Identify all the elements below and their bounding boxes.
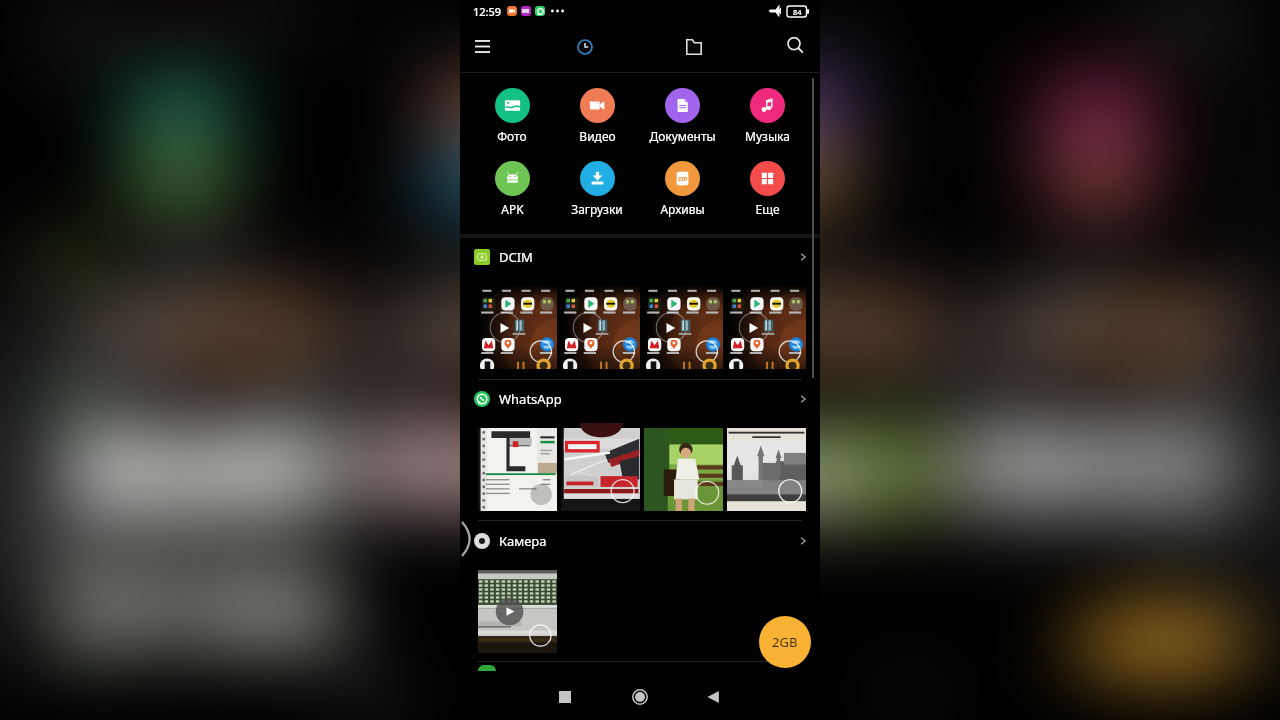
staticText: Архивы xyxy=(712,201,874,217)
staticText: Еще xyxy=(1054,201,1144,217)
button[interactable]: Recents xyxy=(545,677,585,717)
button[interactable] xyxy=(654,428,939,511)
button[interactable] xyxy=(57,428,341,511)
button[interactable]: APK xyxy=(467,161,557,217)
button[interactable]: Камера xyxy=(0,525,1280,557)
staticText: DCIM xyxy=(499,248,533,266)
staticText: WhatsApp xyxy=(499,390,562,408)
staticText: Музыка xyxy=(1018,128,1180,144)
staticText: Видео xyxy=(420,128,554,144)
staticText: Документы xyxy=(672,128,914,144)
staticText: 2GB xyxy=(1115,633,1209,651)
staticText: DCIM xyxy=(132,248,255,266)
staticText: ZIP xyxy=(678,175,688,183)
button[interactable]: DCIM xyxy=(0,241,1280,273)
staticText: Документы xyxy=(649,128,716,144)
button[interactable]: Еще xyxy=(722,161,812,217)
staticText: APK xyxy=(501,201,524,217)
button[interactable]: Folders xyxy=(676,29,712,65)
button[interactable]: Menu xyxy=(6,28,136,64)
staticText: ZIP xyxy=(777,175,813,183)
button[interactable] xyxy=(727,286,806,369)
button[interactable]: Search xyxy=(1133,27,1263,63)
button[interactable]: Home xyxy=(620,677,660,717)
staticText: Камера xyxy=(132,532,305,550)
button[interactable] xyxy=(356,286,640,369)
button[interactable] xyxy=(727,428,806,511)
button[interactable] xyxy=(478,286,557,369)
button[interactable]: APK xyxy=(17,161,341,217)
staticText: 84 xyxy=(793,7,802,17)
button[interactable]: WhatsApp xyxy=(0,383,1280,415)
button[interactable] xyxy=(57,286,341,369)
button[interactable]: Документы xyxy=(637,88,727,144)
button[interactable]: WhatsApp xyxy=(460,383,820,415)
button[interactable] xyxy=(561,428,640,511)
button[interactable]: Камера xyxy=(460,525,820,557)
button[interactable]: Фото xyxy=(467,88,557,144)
staticText: Камера xyxy=(499,532,547,550)
button[interactable]: 2GB xyxy=(759,616,811,668)
staticText: WB xyxy=(522,8,530,14)
button[interactable] xyxy=(644,428,723,511)
staticText: 2GB xyxy=(772,633,798,651)
button[interactable] xyxy=(953,428,1238,511)
button[interactable]: Recents xyxy=(298,677,442,717)
button[interactable]: Загрузки xyxy=(552,161,642,217)
button[interactable] xyxy=(478,428,557,511)
button[interactable] xyxy=(654,286,939,369)
button[interactable]: Еще xyxy=(935,161,1259,217)
staticText: Фото xyxy=(125,128,233,144)
staticText: 12:59 xyxy=(473,4,502,19)
button[interactable]: Документы xyxy=(629,88,953,144)
staticText: Загрузки xyxy=(392,201,579,217)
button[interactable]: Загрузки xyxy=(323,161,647,217)
staticText: Видео xyxy=(579,128,616,144)
button[interactable]: Фото xyxy=(17,88,341,144)
staticText: Архивы xyxy=(660,201,705,217)
button[interactable]: ZIP xyxy=(637,161,727,217)
button[interactable]: DCIM xyxy=(460,241,820,273)
button[interactable]: Музыка xyxy=(722,88,812,144)
staticText: WhatsApp xyxy=(132,390,359,408)
staticText: Фото xyxy=(497,128,527,144)
button[interactable]: ZIP xyxy=(629,161,953,217)
button[interactable] xyxy=(953,286,1238,369)
button[interactable] xyxy=(644,286,723,369)
button[interactable] xyxy=(478,570,557,653)
button[interactable]: Видео xyxy=(323,88,647,144)
staticText: APK xyxy=(140,201,222,217)
button[interactable]: 2GB xyxy=(1068,616,1256,668)
button[interactable]: Folders xyxy=(770,29,899,65)
button[interactable]: Home xyxy=(568,677,712,717)
staticText: Еще xyxy=(755,201,780,217)
button[interactable]: Search xyxy=(777,27,813,63)
button[interactable] xyxy=(57,570,341,653)
button[interactable]: Menu xyxy=(464,28,500,64)
staticText: Музыка xyxy=(745,128,790,144)
button[interactable]: Recent files xyxy=(377,29,507,65)
button[interactable]: Видео xyxy=(552,88,642,144)
staticText: Загрузки xyxy=(571,201,623,217)
button[interactable]: Back xyxy=(693,677,733,717)
button[interactable]: Музыка xyxy=(935,88,1259,144)
button[interactable] xyxy=(356,428,640,511)
button[interactable] xyxy=(561,286,640,369)
button[interactable]: Recent files xyxy=(567,29,603,65)
